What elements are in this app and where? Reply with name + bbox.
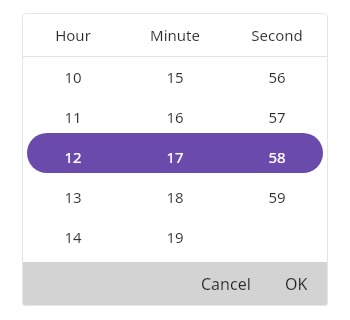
- button[interactable]: Hour: [22, 13, 124, 56]
- staticText: 11: [64, 107, 82, 127]
- button[interactable]: Cancel: [189, 265, 263, 303]
- other: Second: [226, 57, 328, 262]
- button[interactable]: 19: [124, 217, 226, 257]
- staticText: 10: [64, 67, 82, 87]
- button[interactable]: 10: [22, 57, 124, 97]
- button[interactable]: 15: [124, 57, 226, 97]
- button[interactable]: 17: [124, 137, 226, 177]
- staticText: 56: [268, 67, 286, 87]
- staticText: 57: [268, 107, 286, 127]
- button[interactable]: 11: [22, 97, 124, 137]
- button[interactable]: 57: [226, 97, 328, 137]
- other: Hour: [22, 57, 124, 262]
- staticText: 13: [64, 187, 82, 207]
- staticText: OK: [285, 273, 308, 295]
- staticText: 18: [166, 187, 184, 207]
- button[interactable]: Minute: [124, 13, 226, 56]
- button[interactable]: 12: [22, 137, 124, 177]
- staticText: 17: [166, 147, 184, 167]
- button[interactable]: Second: [226, 13, 328, 56]
- staticText: 19: [166, 227, 184, 247]
- button[interactable]: 59: [226, 177, 328, 217]
- button[interactable]: 13: [22, 177, 124, 217]
- button[interactable]: OK: [273, 265, 320, 303]
- staticText: 59: [268, 187, 286, 207]
- button[interactable]: 16: [124, 97, 226, 137]
- staticText: 16: [166, 107, 184, 127]
- button[interactable]: 58: [226, 137, 328, 177]
- staticText: Second: [251, 25, 303, 45]
- button[interactable]: 56: [226, 57, 328, 97]
- staticText: Minute: [150, 25, 200, 45]
- staticText: Cancel: [201, 273, 251, 295]
- button[interactable]: 18: [124, 177, 226, 217]
- staticText: 12: [64, 147, 82, 167]
- other: Minute: [124, 57, 226, 262]
- staticText: 15: [166, 67, 184, 87]
- button[interactable]: 14: [22, 217, 124, 257]
- staticText: Hour: [55, 25, 91, 45]
- staticText: 14: [64, 227, 82, 247]
- staticText: 58: [268, 147, 286, 167]
